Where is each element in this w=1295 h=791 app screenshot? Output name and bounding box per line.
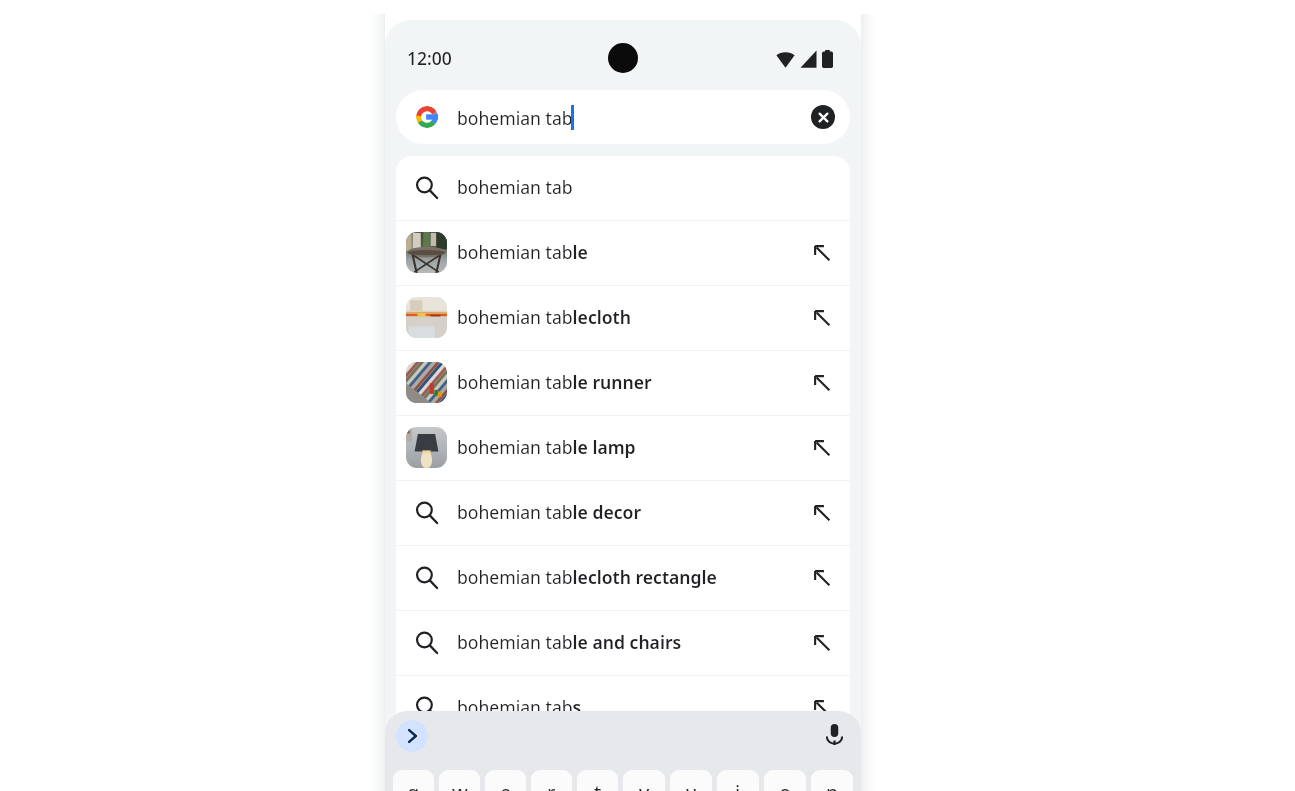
staticText: bohemian tabs xyxy=(457,695,582,719)
button[interactable]: bohemian tablecloth xyxy=(396,286,850,350)
button[interactable]: u xyxy=(670,770,712,791)
staticText: bohemian table lamp xyxy=(457,435,636,459)
button[interactable]: Fill in suggestion xyxy=(794,286,850,350)
button[interactable]: Fill in suggestion xyxy=(794,546,850,610)
button[interactable]: e xyxy=(485,770,526,791)
button[interactable]: bohemian table runner xyxy=(396,351,850,415)
button[interactable]: Fill in suggestion xyxy=(794,416,850,480)
button[interactable]: bohemian table and chairs xyxy=(396,611,850,675)
button[interactable]: bohemian tabs xyxy=(396,676,850,740)
button[interactable]: y xyxy=(623,770,665,791)
button[interactable]: bohemian tab xyxy=(396,90,850,144)
staticText: bohemian table xyxy=(457,240,588,264)
button[interactable]: Fill in suggestion xyxy=(794,221,850,285)
staticText: p xyxy=(826,779,839,791)
button[interactable]: Fill in suggestion xyxy=(794,481,850,545)
button[interactable]: Fill in suggestion xyxy=(794,611,850,675)
button[interactable]: Fill in suggestion xyxy=(794,676,850,740)
button[interactable]: Clear search xyxy=(811,105,835,129)
staticText: o xyxy=(779,779,792,791)
button[interactable]: q xyxy=(393,770,434,791)
staticText: t xyxy=(594,779,602,791)
staticText: e xyxy=(500,779,512,791)
staticText: bohemian table runner xyxy=(457,370,652,394)
button[interactable]: Voice input xyxy=(820,720,848,748)
button[interactable]: bohemian tab xyxy=(396,156,850,220)
button[interactable]: r xyxy=(531,770,572,791)
staticText: q xyxy=(407,779,420,791)
button[interactable]: t xyxy=(577,770,618,791)
staticText: bohemian tab xyxy=(457,175,573,199)
button[interactable]: bohemian table decor xyxy=(396,481,850,545)
button[interactable]: i xyxy=(717,770,759,791)
button[interactable]: bohemian table lamp xyxy=(396,416,850,480)
staticText: bohemian tablecloth xyxy=(457,305,631,329)
staticText: 12:00 xyxy=(407,46,452,70)
staticText: i xyxy=(735,779,741,791)
button[interactable]: bohemian table xyxy=(396,221,850,285)
button[interactable]: p xyxy=(811,770,853,791)
staticText: bohemian table and chairs xyxy=(457,630,682,654)
staticText: w xyxy=(452,779,468,791)
staticText: bohemian tab xyxy=(457,106,573,130)
button[interactable]: o xyxy=(764,770,806,791)
staticText: r xyxy=(547,779,556,791)
staticText: u xyxy=(685,779,698,791)
staticText: bohemian table decor xyxy=(457,500,642,524)
button[interactable]: w xyxy=(439,770,480,791)
staticText: bohemian tablecloth rectangle xyxy=(457,565,717,589)
staticText: y xyxy=(639,779,650,791)
button[interactable]: bohemian tablecloth rectangle xyxy=(396,546,850,610)
button[interactable]: Expand suggestions xyxy=(396,720,428,752)
button[interactable]: Fill in suggestion xyxy=(794,351,850,415)
